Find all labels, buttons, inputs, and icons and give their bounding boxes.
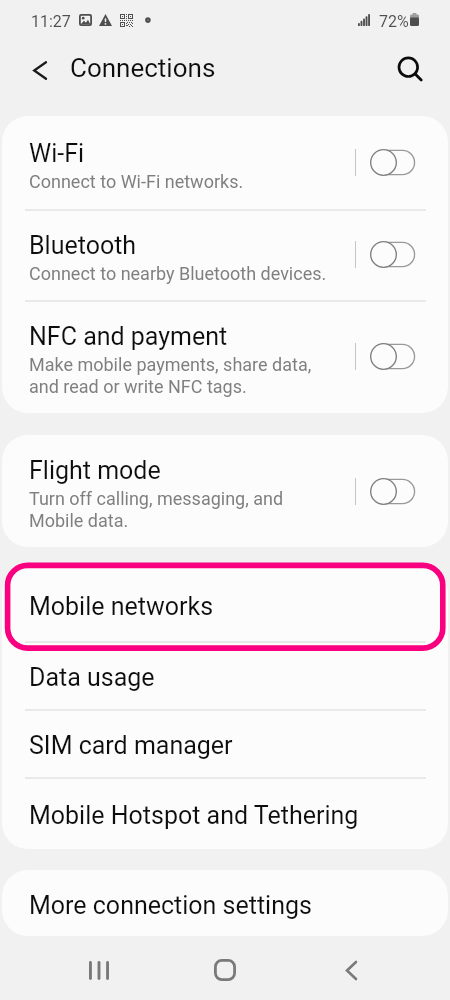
staticText: Connections — [70, 53, 216, 83]
staticText: SIM card manager — [29, 731, 233, 760]
button[interactable]: Mobile Hotspot and Tethering — [2, 777, 448, 849]
staticText: Mobile networks — [29, 592, 214, 621]
staticText: Data usage — [29, 663, 155, 692]
staticText: Turn off calling, messaging, and Mobile … — [29, 488, 284, 532]
button[interactable]: Wi-Fi — [2, 116, 448, 209]
staticText: Flight mode — [29, 456, 161, 485]
button[interactable]: Home — [201, 946, 249, 994]
staticText: NFC and payment — [29, 322, 228, 351]
staticText: 72% — [379, 12, 409, 31]
staticText: Connect to Wi-Fi networks. — [29, 171, 244, 192]
button[interactable]: More connection settings — [2, 870, 448, 936]
staticText: Wi-Fi — [29, 139, 85, 168]
button[interactable]: Flight mode — [2, 435, 448, 547]
button[interactable]: Navigate up — [18, 48, 62, 92]
button[interactable]: Data usage — [2, 641, 448, 709]
staticText: Bluetooth — [29, 231, 137, 260]
button[interactable]: Mobile networks — [2, 568, 448, 641]
button[interactable]: Recent apps — [75, 946, 123, 994]
staticText: Connect to nearby Bluetooth devices. — [29, 263, 327, 284]
staticText: More connection settings — [29, 891, 312, 920]
button[interactable]: SIM card manager — [2, 709, 448, 777]
staticText: 11:27 — [31, 12, 71, 31]
button[interactable]: NFC and payment — [2, 300, 448, 413]
staticText: Make mobile payments, share data, and re… — [29, 354, 312, 398]
button[interactable]: Back — [327, 946, 375, 994]
button[interactable]: Bluetooth — [2, 209, 448, 300]
staticText: Mobile Hotspot and Tethering — [29, 801, 359, 830]
button[interactable]: Search — [389, 48, 433, 92]
